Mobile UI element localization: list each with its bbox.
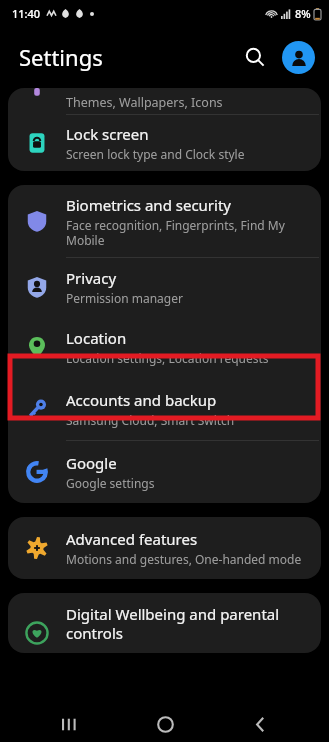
staticText: Privacy — [66, 268, 117, 288]
button[interactable]: Privacy — [8, 258, 321, 316]
button[interactable]: Lock screen — [8, 115, 321, 171]
staticText: Samsung Cloud, Smart Switch — [66, 412, 235, 428]
button[interactable]: Digital Wellbeing and parental controls — [8, 593, 321, 653]
staticText: Permission manager — [66, 290, 183, 306]
staticText: Settings — [19, 42, 103, 72]
staticText: Themes, Wallpapers, Icons — [66, 94, 223, 111]
staticText: Google — [66, 453, 117, 473]
staticText: Digital Wellbeing and parental controls — [66, 604, 307, 643]
staticText: Accounts and backup — [66, 390, 217, 410]
button[interactable]: Accounts and backup — [8, 378, 321, 440]
button[interactable]: Advanced features — [8, 517, 321, 579]
button[interactable]: Location — [8, 316, 321, 378]
button[interactable]: Search — [236, 38, 274, 76]
staticText: Motions and gestures, One-handed mode — [66, 551, 302, 567]
button[interactable]: Themes, Wallpapers, Icons — [8, 88, 321, 114]
staticText: Face recognition, Fingerprints, Find My … — [66, 217, 307, 248]
staticText: Advanced features — [66, 529, 198, 549]
staticText: Lock screen — [66, 124, 149, 144]
staticText: Biometrics and security — [66, 195, 232, 215]
button[interactable]: Recent apps — [42, 706, 96, 742]
button[interactable]: Biometrics and security — [8, 185, 321, 257]
button[interactable]: Account — [282, 41, 315, 74]
staticText: Location — [66, 328, 127, 348]
staticText: Location settings, Location requests — [66, 350, 269, 366]
staticText: Screen lock type and Clock style — [66, 146, 245, 162]
button[interactable]: Google — [8, 441, 321, 503]
button[interactable]: Back — [233, 706, 287, 742]
staticText: 8% — [295, 6, 311, 21]
staticText: 11:40 — [12, 6, 41, 21]
staticText: Google settings — [66, 475, 155, 491]
button[interactable]: Home — [138, 706, 192, 742]
